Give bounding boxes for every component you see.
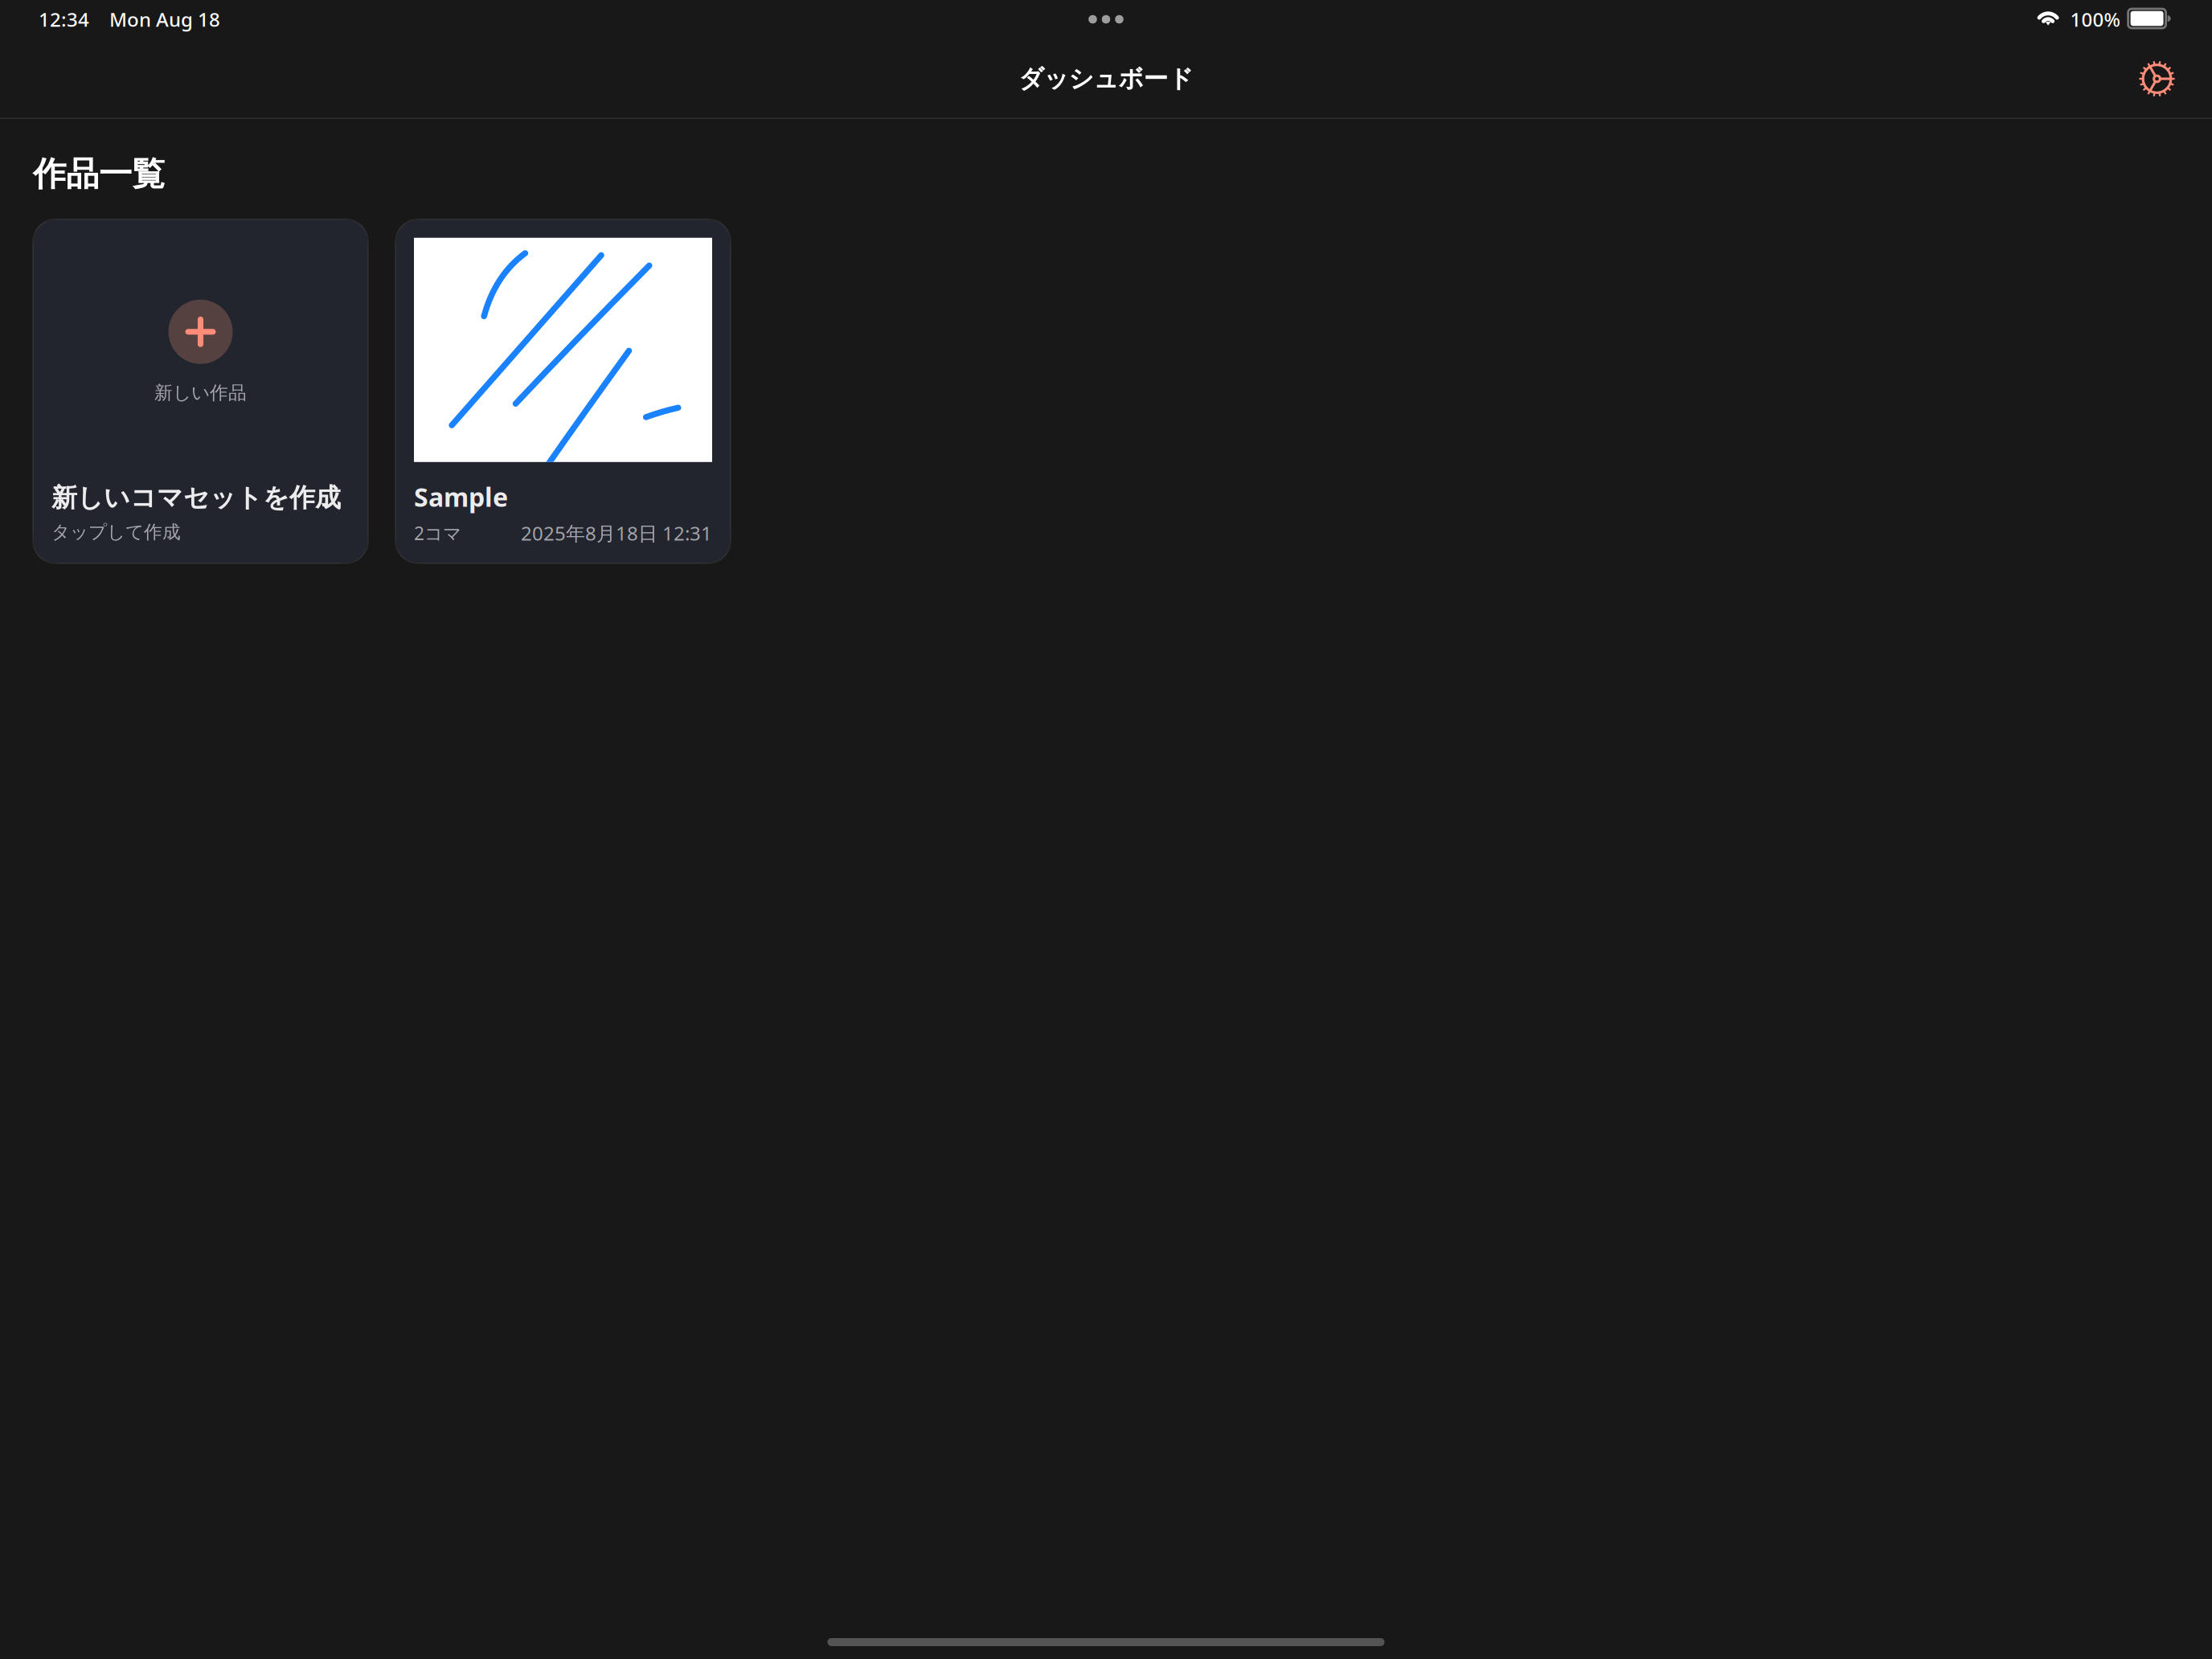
button[interactable]: 新しい作品 xyxy=(33,219,368,563)
staticText: 新しいコマセットを作成 xyxy=(51,482,341,514)
staticText: タップして作成 xyxy=(51,521,181,543)
staticText: 新しい作品 xyxy=(154,382,247,404)
button[interactable]: Sample xyxy=(395,219,731,563)
staticText: Mon Aug 18 xyxy=(109,7,220,32)
button[interactable]: Settings xyxy=(2128,51,2186,107)
staticText: 2コマ xyxy=(414,521,461,545)
staticText: ダッシュボード xyxy=(1019,64,1193,94)
staticText: 作品一覧 xyxy=(33,154,165,194)
staticText: 2025年8月18日 12:31 xyxy=(521,520,712,546)
staticText: Sample xyxy=(414,480,508,514)
staticText: 100% xyxy=(2070,7,2120,32)
staticText: 12:34 xyxy=(39,7,89,32)
